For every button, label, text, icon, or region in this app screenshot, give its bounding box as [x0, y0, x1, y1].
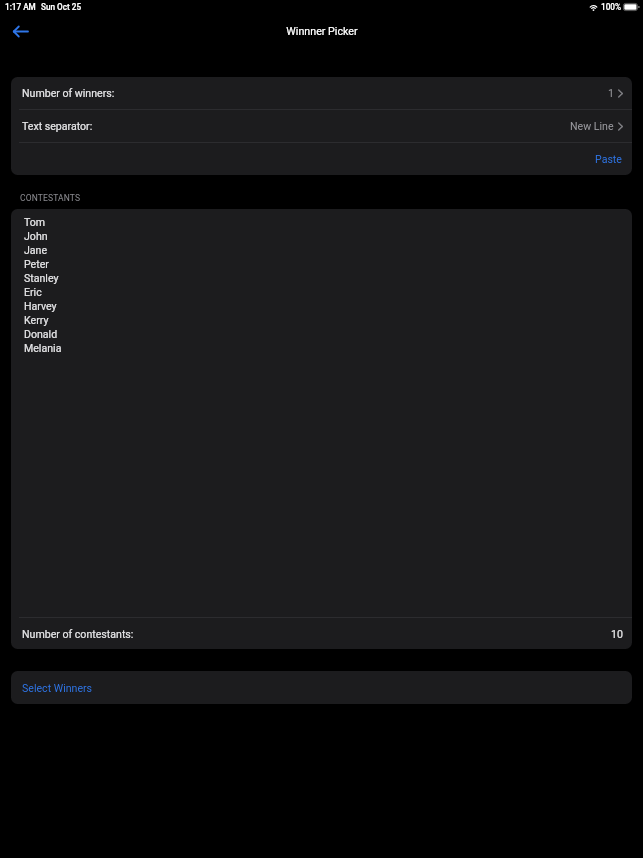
staticText: 100% — [601, 2, 621, 12]
staticText: 1 — [608, 87, 614, 99]
staticText: Sun Oct 25 — [41, 2, 82, 12]
staticText: Paste — [595, 153, 622, 165]
staticText: Number of winners: — [22, 87, 115, 99]
button[interactable]: Text separator: — [11, 110, 632, 142]
button[interactable]: Tom John Jane Peter Stanley Eric Harvey … — [11, 209, 632, 617]
staticText: Winnner Picker — [286, 25, 358, 38]
staticText: Select Winners — [22, 682, 93, 694]
staticText: 1:17 AM — [5, 2, 36, 12]
staticText: CONTESTANTS — [20, 193, 81, 203]
button[interactable]: Back — [12, 22, 30, 41]
staticText: Text separator: — [22, 120, 93, 132]
button[interactable]: Number of winners: — [11, 77, 632, 109]
button[interactable]: Select Winners — [11, 671, 632, 704]
staticText: Number of contestants: — [22, 628, 134, 640]
staticText: 10 — [611, 628, 623, 640]
staticText: New Line — [570, 120, 614, 132]
button[interactable]: Paste — [11, 143, 632, 175]
staticText: Tom John Jane Peter Stanley Eric Harvey … — [24, 216, 62, 354]
